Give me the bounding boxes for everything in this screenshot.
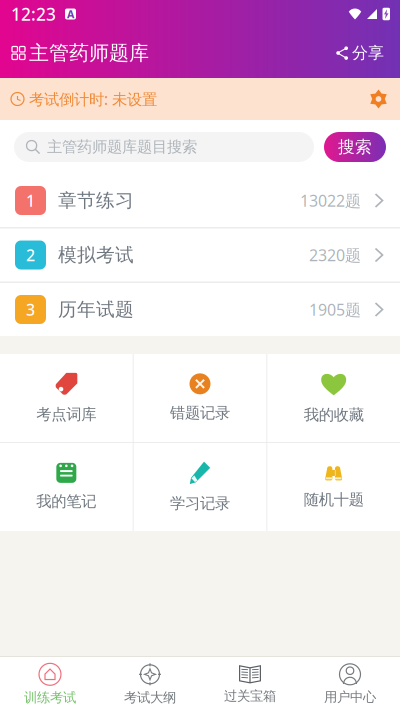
- button[interactable]: 随机十题: [267, 443, 400, 531]
- staticText: 模拟考试: [58, 243, 134, 266]
- button[interactable]: 我的收藏: [267, 354, 400, 442]
- staticText: 考试倒计时: 未设置: [29, 89, 157, 109]
- button[interactable]: 2: [0, 228, 400, 281]
- button[interactable]: 学习记录: [134, 443, 266, 531]
- staticText: 1: [26, 190, 35, 211]
- button[interactable]: 考试大纲: [100, 657, 200, 712]
- staticText: 我的笔记: [36, 492, 96, 511]
- button[interactable]: 错题记录: [134, 354, 266, 442]
- staticText: 3: [26, 299, 35, 320]
- staticText: 考试大纲: [124, 689, 176, 706]
- staticText: 错题记录: [170, 403, 230, 423]
- staticText: 1905题: [309, 299, 361, 320]
- button[interactable]: 3: [0, 283, 400, 336]
- staticText: A: [67, 7, 74, 21]
- staticText: 训练考试: [24, 689, 76, 706]
- staticText: 2320题: [309, 244, 361, 266]
- button[interactable]: 1: [0, 174, 400, 227]
- staticText: 我的收藏: [304, 405, 364, 425]
- button[interactable]: 主管药师题库题目搜索: [14, 132, 314, 162]
- staticText: 主管药师题库: [29, 41, 149, 65]
- staticText: 13022题: [300, 190, 361, 211]
- staticText: 主管药师题库题目搜索: [47, 137, 197, 157]
- button[interactable]: 我的笔记: [0, 443, 133, 531]
- button[interactable]: 分享: [331, 37, 388, 69]
- staticText: 12:23: [11, 2, 56, 25]
- button[interactable]: 训练考试: [0, 657, 100, 712]
- button[interactable]: 考试倒计时: 未设置: [0, 78, 400, 120]
- staticText: 用户中心: [324, 689, 376, 705]
- staticText: 搜索: [338, 136, 372, 157]
- staticText: 分享: [352, 43, 384, 63]
- button[interactable]: 搜索: [324, 132, 386, 162]
- staticText: 2: [26, 244, 35, 266]
- button[interactable]: 过关宝箱: [200, 657, 300, 712]
- staticText: 章节练习: [58, 189, 134, 212]
- staticText: 考点词库: [36, 405, 96, 424]
- button[interactable]: 考点词库: [0, 354, 133, 442]
- staticText: 学习记录: [170, 494, 230, 513]
- staticText: 过关宝箱: [224, 688, 276, 704]
- staticText: 随机十题: [304, 490, 364, 509]
- staticText: 历年试题: [58, 298, 134, 321]
- button[interactable]: 用户中心: [300, 657, 400, 712]
